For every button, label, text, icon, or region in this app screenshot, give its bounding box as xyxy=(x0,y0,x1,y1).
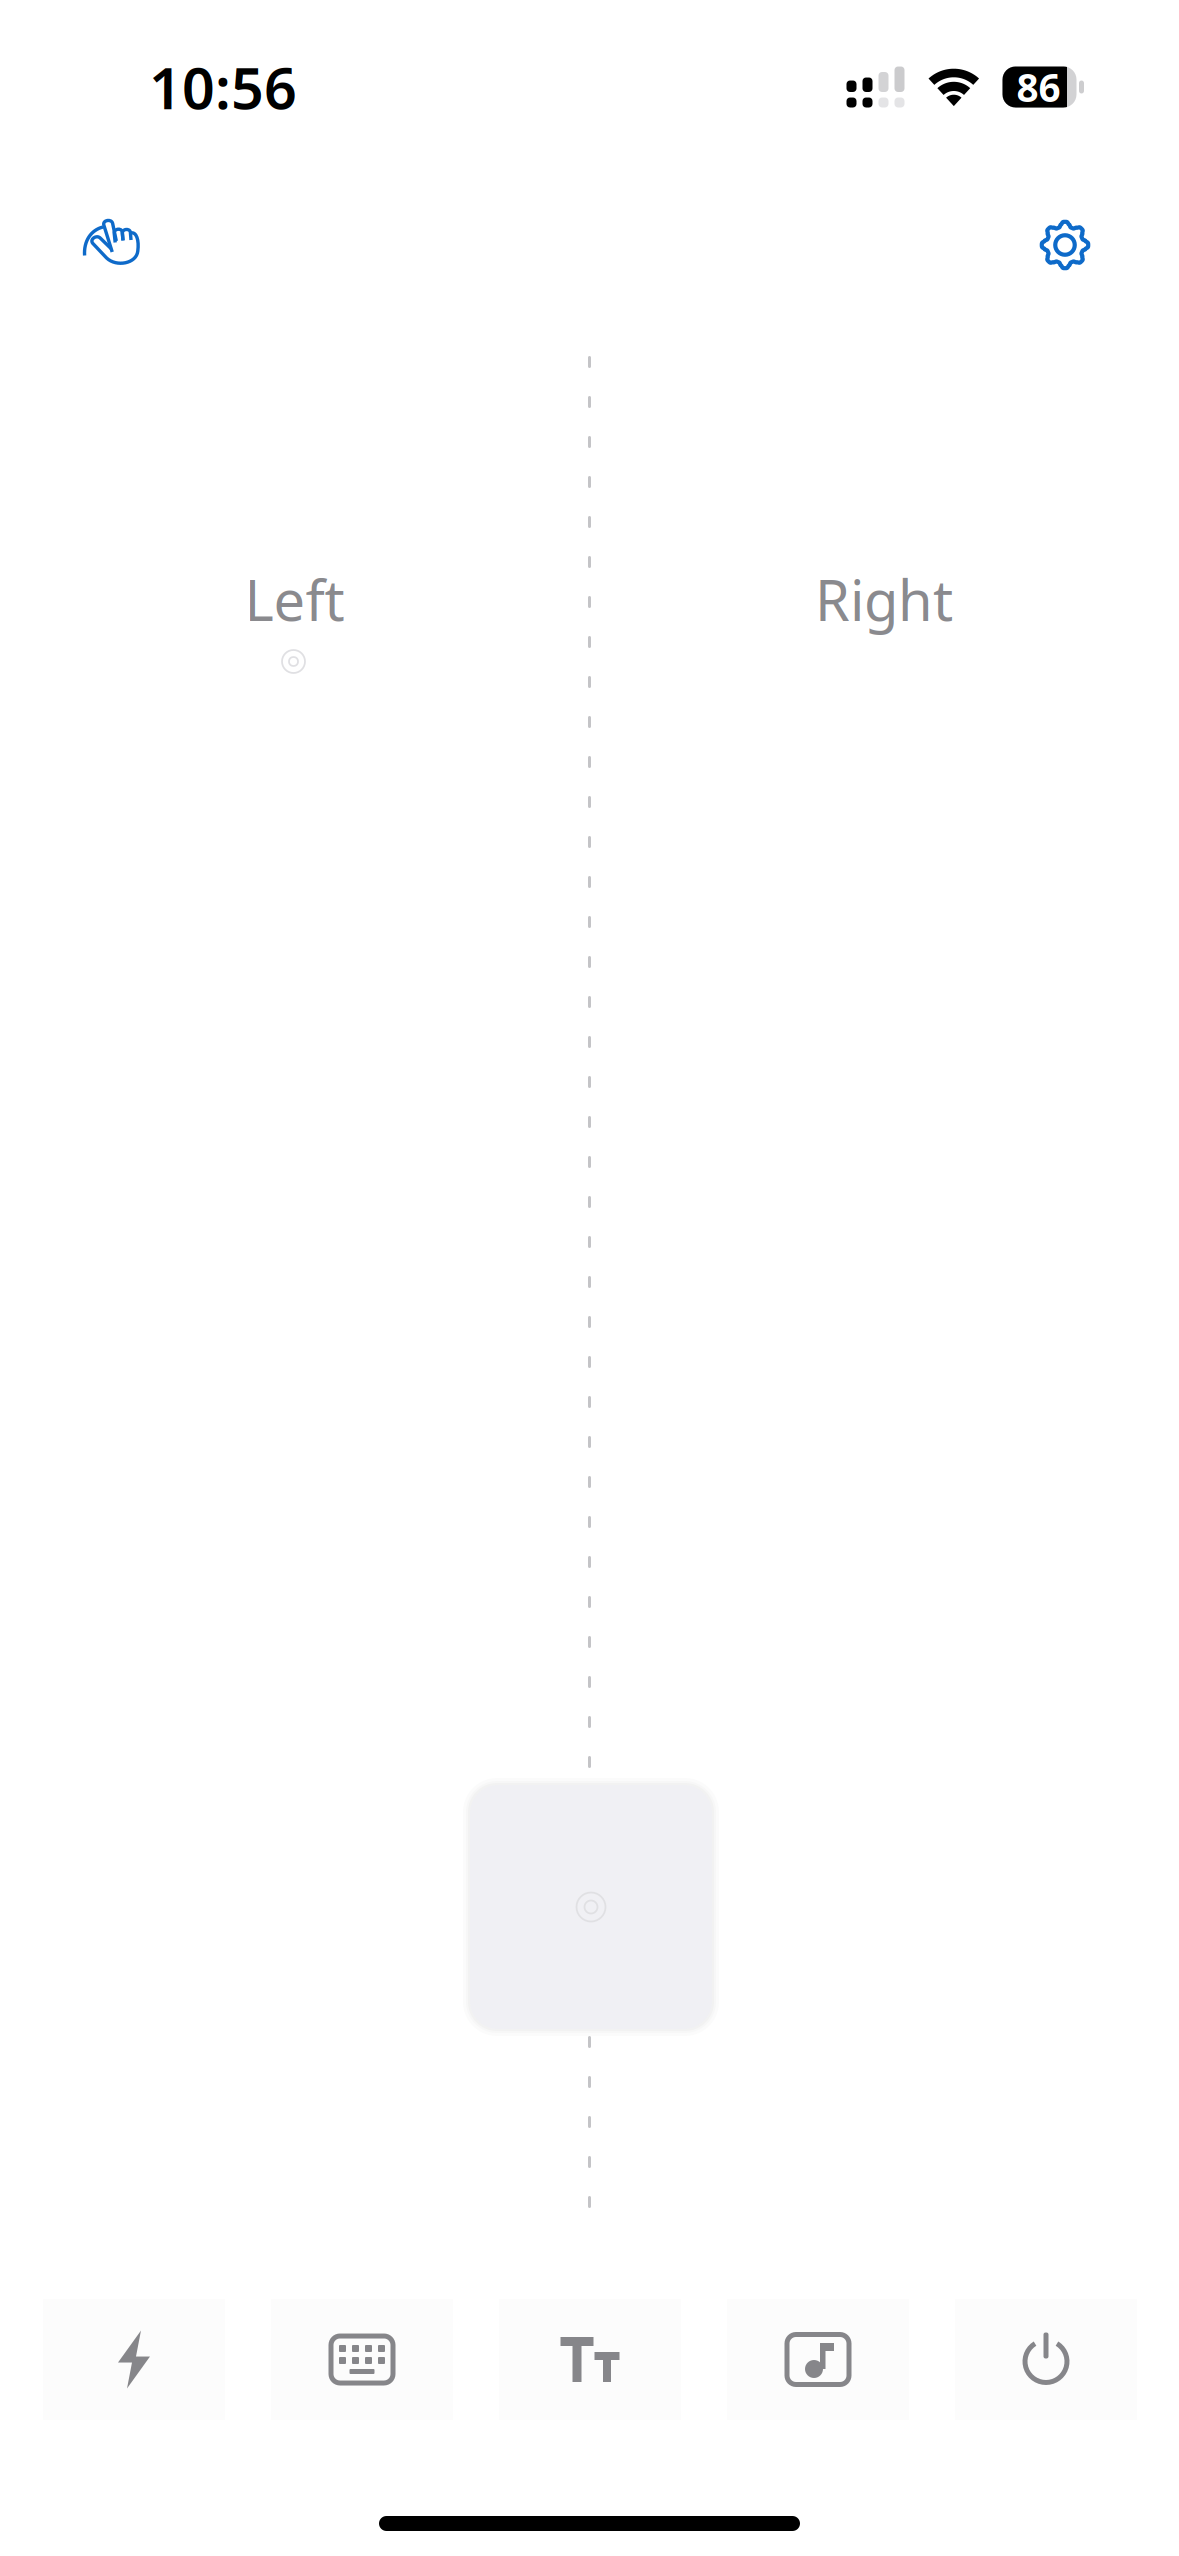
button[interactable]: Left xyxy=(0,310,589,1770)
button[interactable]: Click xyxy=(462,1777,720,2037)
button[interactable]: Right xyxy=(589,310,1179,1770)
button[interactable]: Settings xyxy=(1015,195,1115,295)
button[interactable]: Pointer mode xyxy=(62,195,162,295)
button[interactable]: Text xyxy=(499,2299,681,2420)
button[interactable]: Power xyxy=(955,2299,1137,2420)
button[interactable]: Shortcuts xyxy=(43,2299,225,2420)
staticText: Left xyxy=(244,562,344,636)
button[interactable]: Media xyxy=(727,2299,909,2420)
button[interactable]: Keyboard xyxy=(271,2299,453,2420)
staticText: 10:56 xyxy=(149,49,297,125)
staticText: Right xyxy=(815,562,953,636)
staticText: 86 xyxy=(1016,61,1060,113)
